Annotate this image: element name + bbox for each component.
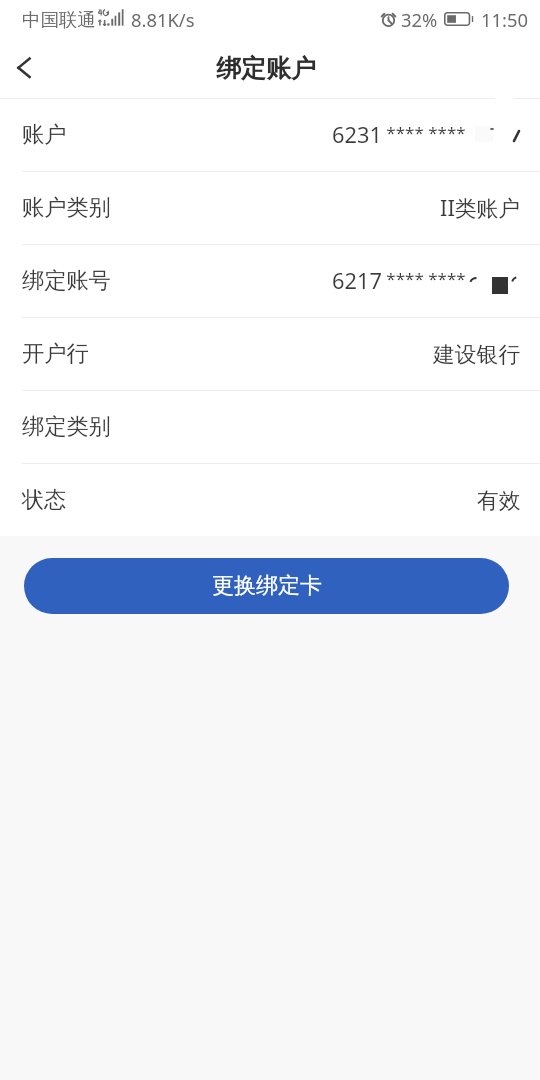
staticText: 绑定账号 — [22, 267, 111, 295]
staticText: 账户 — [22, 121, 67, 149]
staticText: 8.81K/s — [131, 7, 195, 32]
staticText: 账户类别 — [22, 194, 111, 222]
button[interactable]: 开户行 — [0, 318, 540, 390]
staticText: 状态 — [22, 486, 67, 514]
staticText: 6217 **** **** 8888 — [332, 266, 521, 296]
staticText: II类账户 — [440, 193, 521, 223]
staticText: 更换绑定卡 — [212, 572, 322, 600]
button[interactable]: 绑定类别 — [0, 391, 540, 463]
staticText: 有效 — [477, 487, 521, 514]
staticText: 开户行 — [22, 340, 89, 368]
staticText: 6231 **** **** 8888 — [332, 120, 521, 150]
staticText: 绑定类别 — [22, 413, 111, 441]
button[interactable]: 账户 — [0, 99, 540, 171]
staticText: 绑定账户 — [216, 53, 316, 84]
button[interactable]: 账户类别 — [0, 172, 540, 244]
staticText: 建设银行 — [433, 341, 521, 368]
staticText: 32% — [401, 7, 438, 32]
button[interactable]: 更换绑定卡 — [24, 558, 509, 614]
button[interactable]: 绑定账号 — [0, 245, 540, 317]
button[interactable]: Back — [0, 38, 48, 98]
staticText: 中国联通 — [22, 8, 96, 31]
staticText: 11:50 — [481, 7, 529, 32]
button[interactable]: 状态 — [0, 464, 540, 536]
